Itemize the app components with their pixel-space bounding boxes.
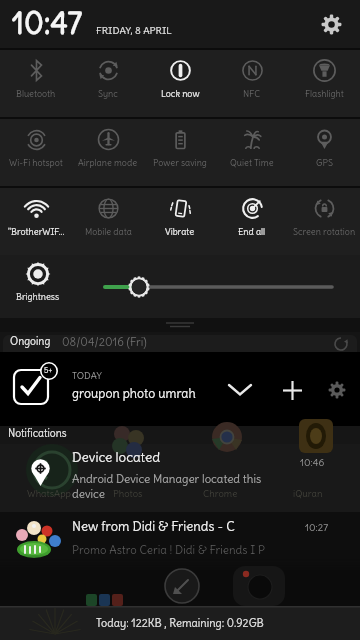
staticText: iQuran (293, 488, 323, 500)
button[interactable]: Sync (72, 50, 144, 117)
staticText: Lock now (161, 88, 200, 99)
staticText: Chrome (203, 488, 238, 500)
button[interactable]: New from Didi & Friends - C (0, 512, 360, 570)
staticText: Ongoing (10, 335, 51, 348)
button[interactable]: Quiet Time (216, 119, 288, 186)
button[interactable]: Brightness (10, 261, 66, 302)
staticText: Notifications (8, 427, 67, 440)
staticText: New from Didi & Friends - C (72, 518, 235, 534)
button[interactable]: Airplane mode (72, 119, 144, 186)
staticText: 08/04/2016 (Fri) (62, 335, 147, 349)
button[interactable]: Power saving (144, 119, 216, 186)
staticText: WhatsApp (27, 488, 71, 500)
staticText: Airplane mode (78, 157, 138, 168)
staticText: Bluetooth (16, 88, 56, 99)
staticText: Sync (98, 88, 118, 99)
staticText: TODAY (72, 370, 102, 382)
staticText: FRIDAY, 8 APRIL (96, 24, 172, 37)
staticText: groupon photo umrah (72, 386, 196, 402)
button[interactable]: Today: 122KB , Remaining: 0.92GB (0, 606, 360, 640)
staticText: Brightness (16, 291, 60, 302)
button[interactable]: Lock now (144, 50, 216, 117)
button[interactable] (320, 373, 354, 407)
button[interactable]: Screen rotation (288, 188, 360, 255)
button[interactable]: Wi-Fi hotspot (0, 119, 72, 186)
staticText: 10:47 (12, 4, 83, 42)
staticText: Power saving (153, 157, 207, 168)
button[interactable]: WhatsApp (0, 444, 360, 512)
button[interactable]: 5+ (0, 352, 360, 426)
button[interactable] (100, 267, 340, 307)
button[interactable]: End all (216, 188, 288, 255)
button[interactable]: Vibrate (144, 188, 216, 255)
staticText: Mobile data (85, 226, 132, 237)
button[interactable] (222, 372, 258, 408)
staticText: Photos (113, 488, 143, 500)
staticText: Screen rotation (293, 226, 356, 237)
staticText: Wi-Fi hotspot (9, 157, 63, 168)
button[interactable]: GPS (288, 119, 360, 186)
staticText: Quiet Time (230, 157, 274, 168)
button[interactable] (274, 372, 310, 408)
staticText: NFC (243, 88, 261, 99)
staticText: Device located (72, 449, 161, 466)
staticText: 5+ (44, 366, 53, 375)
staticText: 10:46 (300, 456, 325, 469)
staticText: GPS (316, 157, 333, 168)
staticText: End all (238, 226, 266, 237)
staticText: 10:27 (305, 521, 329, 534)
button[interactable] (314, 7, 348, 41)
button[interactable]: "BrotherWIF... (0, 188, 72, 255)
staticText: Promo Astro Ceria ! Didi & Friends I P (72, 543, 265, 557)
staticText: Android Device Manager located this (72, 472, 262, 486)
button[interactable]: Bluetooth (0, 50, 72, 117)
staticText: Today: 122KB , Remaining: 0.92GB (96, 616, 264, 630)
button[interactable]: Flashlight (288, 50, 360, 117)
staticText: Flashlight (305, 88, 344, 99)
staticText: Vibrate (165, 226, 195, 237)
button[interactable]: NFC (216, 50, 288, 117)
staticText: "BrotherWIF... (8, 226, 65, 237)
staticText: device (72, 487, 105, 501)
button[interactable]: Mobile data (72, 188, 144, 255)
